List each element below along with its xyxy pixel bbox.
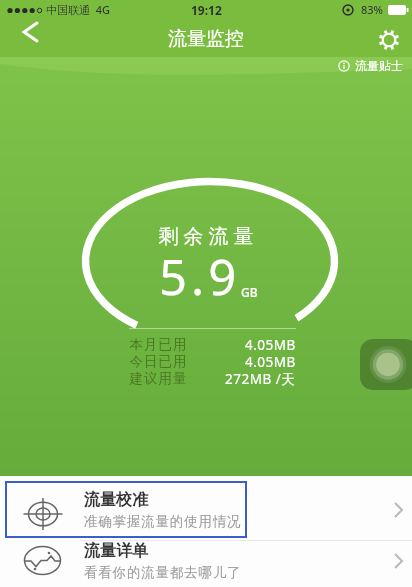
button[interactable] bbox=[360, 339, 412, 390]
staticText: 流量监控 bbox=[168, 27, 244, 51]
staticText: 5.9 bbox=[159, 243, 241, 310]
staticText: GB bbox=[241, 284, 258, 300]
button[interactable]: 流量校准 bbox=[0, 479, 412, 540]
staticText: 中国联通 4G bbox=[46, 2, 111, 17]
button[interactable]: 流量贴士 bbox=[338, 58, 403, 73]
staticText: 流量贴士 bbox=[355, 58, 403, 73]
button[interactable] bbox=[22, 22, 40, 42]
staticText: 272MB /天 bbox=[225, 370, 296, 387]
staticText: 本月已用 bbox=[129, 336, 187, 353]
button[interactable] bbox=[377, 28, 401, 52]
staticText: 建议用量 bbox=[129, 370, 187, 387]
staticText: 4.05MB bbox=[245, 336, 296, 353]
staticText: 流量校准 bbox=[84, 490, 148, 510]
staticText: 看看你的流量都去哪儿了 bbox=[84, 564, 242, 581]
staticText: 4.05MB bbox=[245, 353, 296, 370]
button[interactable]: 流量详单 bbox=[0, 539, 412, 583]
staticText: 剩余流量 bbox=[156, 224, 256, 249]
staticText: 流量详单 bbox=[84, 541, 148, 561]
staticText: 准确掌握流量的使用情况 bbox=[84, 513, 242, 530]
staticText: 83% bbox=[361, 2, 383, 17]
staticText: 今日已用 bbox=[129, 353, 187, 370]
staticText: 19:12 bbox=[191, 2, 222, 18]
